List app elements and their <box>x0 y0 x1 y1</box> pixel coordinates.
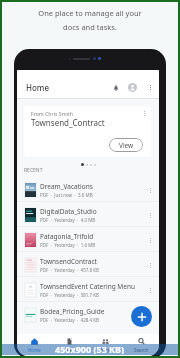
staticText: Files <box>65 347 75 353</box>
button[interactable]: Account <box>126 81 139 94</box>
button[interactable]: File options <box>145 235 155 245</box>
button[interactable]: File options <box>145 260 155 270</box>
button[interactable]: Home <box>17 334 52 356</box>
staticText: TownsendEvent Catering Menu <box>40 282 135 291</box>
staticText: From Chris Smith <box>31 110 73 117</box>
staticText: DigitalData_Studio <box>40 207 97 216</box>
button[interactable]: Patagonia_Trifold <box>17 227 159 252</box>
button[interactable]: DigitalData_Studio <box>17 202 159 227</box>
button[interactable]: File options <box>145 310 155 320</box>
staticText: docs and tasks. <box>63 22 117 32</box>
button[interactable]: Notifications <box>109 81 122 94</box>
button[interactable]: From Chris Smith <box>24 106 151 157</box>
button[interactable]: Card options <box>140 109 149 118</box>
staticText: Home <box>26 82 50 93</box>
staticText: Home <box>28 347 41 353</box>
staticText: Bodea_Pricing_Guide <box>40 307 105 316</box>
staticText: Shared <box>98 347 113 353</box>
staticText: PDF · Yesterday · 457.8 KB <box>40 267 100 273</box>
button[interactable]: TownsendEvent Catering Menu <box>17 277 159 302</box>
button[interactable]: View <box>109 138 143 152</box>
staticText: PDF · Yesterday · 4.0 MB <box>40 217 96 223</box>
button[interactable]: Shared <box>87 334 123 356</box>
button[interactable]: File options <box>145 210 155 220</box>
button[interactable]: Bodea_Pricing_Guide <box>17 302 159 327</box>
staticText: Dream_Vacations <box>40 182 93 191</box>
staticText: View <box>119 141 134 150</box>
staticText: Townsend_Contract <box>31 117 105 128</box>
staticText: 450x900 (53 KB) <box>55 343 125 354</box>
staticText: PDF · Just now · 3.6 MB <box>40 192 93 198</box>
staticText: TownsendContract <box>40 257 97 266</box>
button[interactable]: Files <box>52 334 87 356</box>
button[interactable]: File options <box>145 285 155 295</box>
staticText: One place to manage all your <box>38 8 142 18</box>
button[interactable]: File options <box>145 185 155 195</box>
staticText: RECENT <box>24 167 43 174</box>
button[interactable]: Dream_Vacations <box>17 177 159 202</box>
button[interactable]: Search <box>123 334 159 356</box>
button[interactable]: TownsendContract <box>17 252 159 277</box>
staticText: Search <box>134 347 149 353</box>
button[interactable]: More options <box>144 81 156 93</box>
staticText: PDF · Yesterday · 428.4 KB <box>40 317 100 323</box>
button[interactable]: Create new <box>131 306 152 327</box>
staticText: Patagonia_Trifold <box>40 232 94 241</box>
staticText: PDF · Yesterday · 1.6 MB <box>40 242 96 248</box>
staticText: PDF · Yesterday · 581.7 KB <box>40 292 100 298</box>
